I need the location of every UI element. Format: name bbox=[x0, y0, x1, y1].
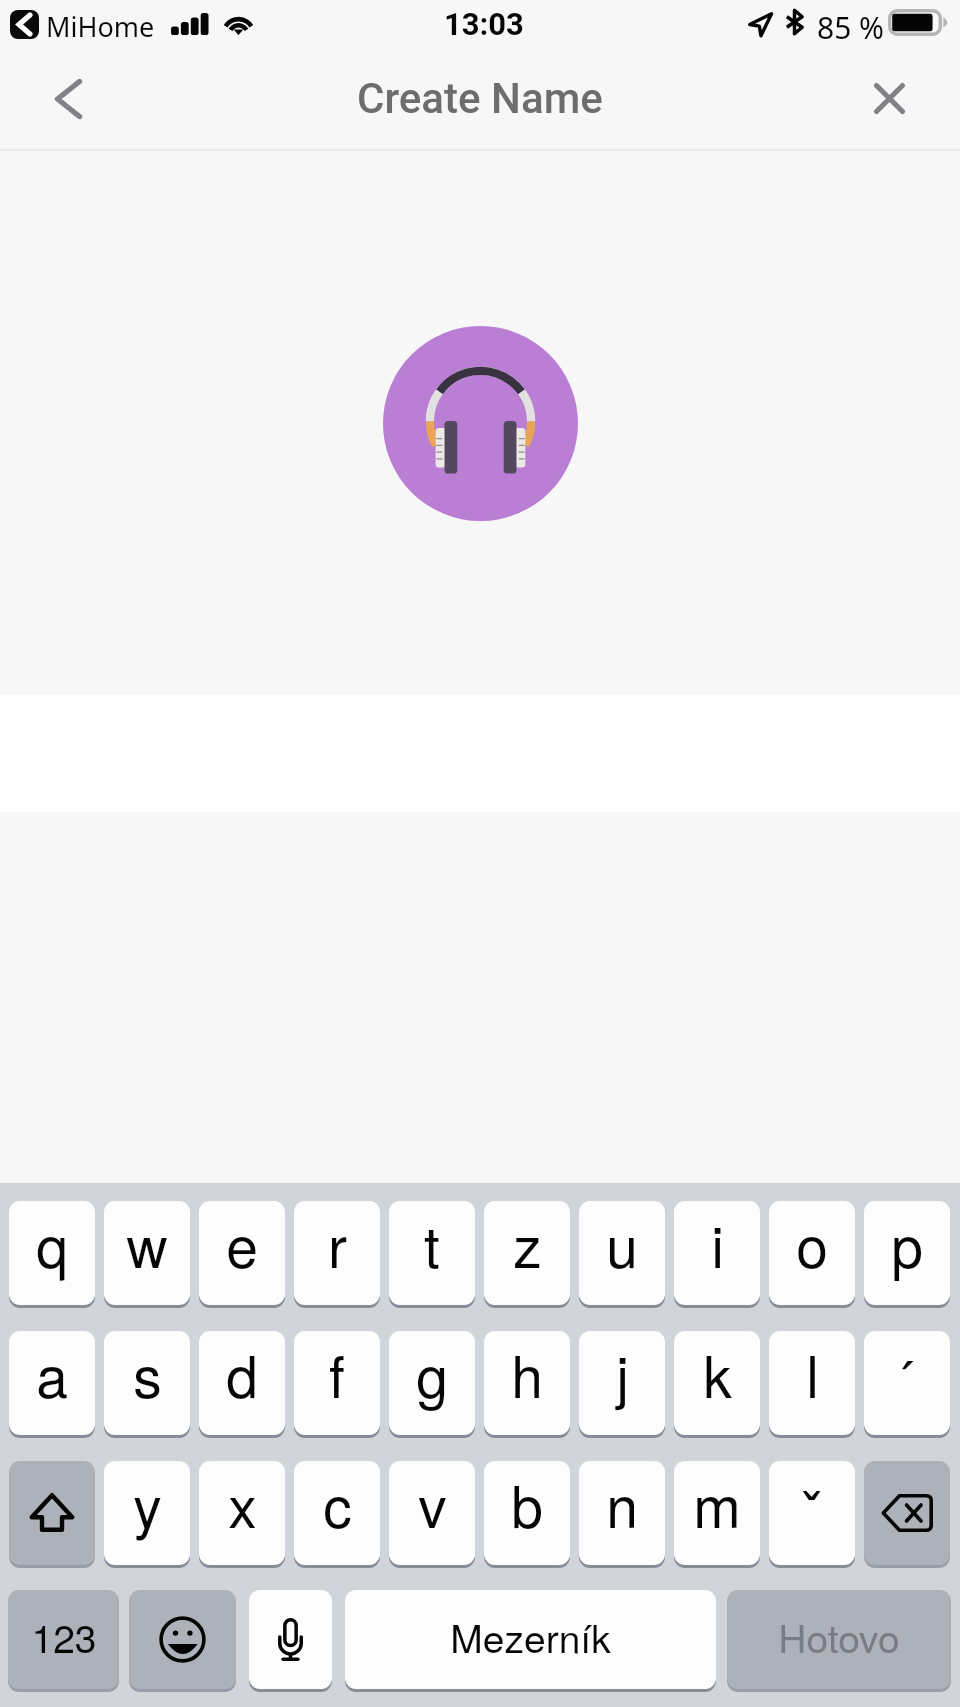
staticText: c bbox=[323, 1463, 352, 1545]
staticText: y bbox=[133, 1463, 162, 1545]
staticText: Mezerník bbox=[450, 1608, 611, 1664]
staticText: u bbox=[606, 1203, 638, 1285]
button[interactable]: i bbox=[674, 1201, 760, 1305]
staticText: j bbox=[616, 1333, 629, 1415]
button[interactable]: w bbox=[104, 1201, 190, 1305]
staticText: g bbox=[416, 1333, 448, 1415]
staticText: ˇ bbox=[801, 1465, 822, 1554]
button[interactable]: Close bbox=[839, 50, 939, 147]
button[interactable]: 123 bbox=[8, 1590, 119, 1689]
staticText: a bbox=[36, 1333, 68, 1415]
staticText: r bbox=[328, 1203, 347, 1285]
button[interactable]: h bbox=[484, 1331, 570, 1435]
staticText: e bbox=[226, 1203, 258, 1285]
staticText: 123 bbox=[31, 1608, 97, 1664]
staticText: t bbox=[424, 1203, 440, 1285]
staticText: MiHome bbox=[46, 8, 155, 45]
button[interactable]: Emoji bbox=[129, 1590, 236, 1689]
button[interactable]: q bbox=[9, 1201, 95, 1305]
button[interactable]: v bbox=[389, 1461, 475, 1565]
button[interactable]: a bbox=[9, 1331, 95, 1435]
button[interactable]: Backspace bbox=[864, 1461, 950, 1565]
staticText: o bbox=[796, 1203, 828, 1285]
button[interactable]: u bbox=[579, 1201, 665, 1305]
button[interactable]: j bbox=[579, 1331, 665, 1435]
button[interactable]: Back bbox=[18, 50, 118, 147]
button[interactable]: r bbox=[294, 1201, 380, 1305]
button[interactable]: x bbox=[199, 1461, 285, 1565]
staticText: ´ bbox=[894, 1338, 913, 1418]
staticText: i bbox=[711, 1203, 724, 1285]
staticText: b bbox=[511, 1463, 543, 1545]
button[interactable]: o bbox=[769, 1201, 855, 1305]
button[interactable]: m bbox=[674, 1461, 760, 1565]
button[interactable]: Dictation bbox=[249, 1590, 332, 1689]
staticText: s bbox=[133, 1333, 162, 1415]
staticText: d bbox=[226, 1333, 258, 1415]
button[interactable]: z bbox=[484, 1201, 570, 1305]
staticText: Hotovo bbox=[778, 1608, 900, 1664]
staticText: l bbox=[806, 1333, 819, 1415]
button[interactable]: Shift bbox=[9, 1461, 95, 1565]
staticText: v bbox=[418, 1463, 447, 1545]
button[interactable]: d bbox=[199, 1331, 285, 1435]
button[interactable]: s bbox=[104, 1331, 190, 1435]
staticText: f bbox=[329, 1333, 345, 1415]
staticText: p bbox=[891, 1203, 923, 1285]
button[interactable]: Hotovo bbox=[727, 1590, 951, 1689]
staticText: 13:03 bbox=[444, 6, 524, 42]
staticText: z bbox=[513, 1203, 542, 1285]
button[interactable]: l bbox=[769, 1331, 855, 1435]
button[interactable]: n bbox=[579, 1461, 665, 1565]
button[interactable]: k bbox=[674, 1331, 760, 1435]
staticText: Create Name bbox=[357, 74, 603, 123]
button[interactable]: y bbox=[104, 1461, 190, 1565]
staticText: 85 % bbox=[817, 7, 885, 48]
staticText: q bbox=[36, 1203, 68, 1285]
staticText: n bbox=[606, 1463, 638, 1545]
button[interactable]: c bbox=[294, 1461, 380, 1565]
button[interactable]: f bbox=[294, 1331, 380, 1435]
button[interactable]: g bbox=[389, 1331, 475, 1435]
staticText: k bbox=[703, 1333, 732, 1415]
staticText: w bbox=[126, 1203, 168, 1285]
button[interactable]: e bbox=[199, 1201, 285, 1305]
button[interactable]: t bbox=[389, 1201, 475, 1305]
staticText: m bbox=[693, 1463, 741, 1545]
staticText: x bbox=[228, 1463, 257, 1545]
button[interactable]: ˇ bbox=[769, 1461, 855, 1565]
button[interactable]: b bbox=[484, 1461, 570, 1565]
button[interactable]: ´ bbox=[864, 1331, 950, 1435]
button[interactable]: p bbox=[864, 1201, 950, 1305]
staticText: h bbox=[511, 1333, 543, 1415]
button[interactable]: Mezerník bbox=[345, 1590, 716, 1689]
